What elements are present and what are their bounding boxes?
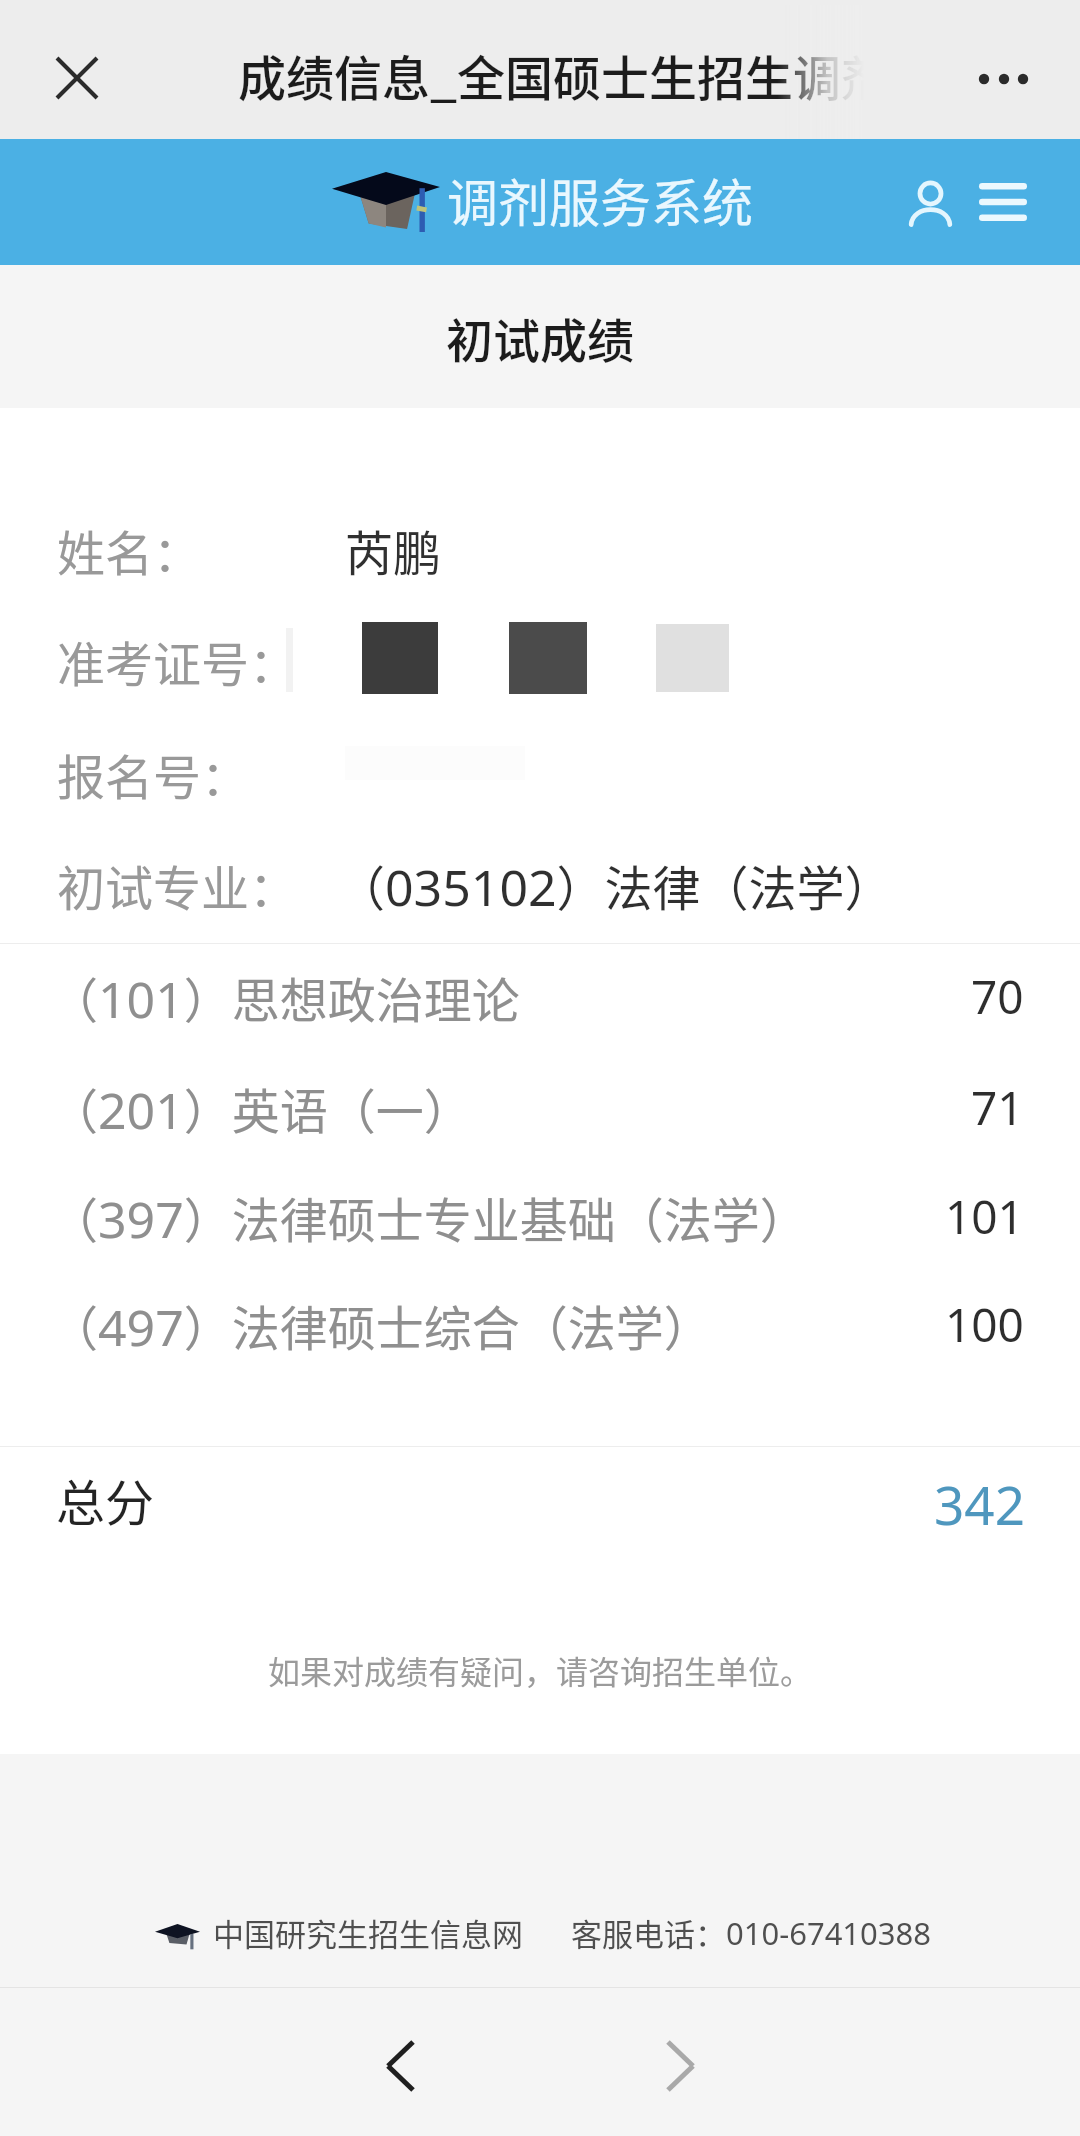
- staticText: 成绩信息_全国硕士生招生调剂服务网: [238, 40, 865, 110]
- staticText: 如果对成绩有疑问，请咨询招生单位。: [0, 1647, 1080, 1693]
- button[interactable]: （497）法律硕士综合（法学）: [50, 1269, 1024, 1380]
- staticText: （497）法律硕士综合（法学）: [50, 1290, 712, 1360]
- staticText: 71: [971, 1076, 1024, 1139]
- staticText: 准考证号：: [57, 626, 298, 696]
- button[interactable]: （101）思想政治理论: [50, 941, 1024, 1052]
- staticText: 70: [971, 965, 1024, 1028]
- button[interactable]: Menu: [961, 152, 1045, 252]
- button[interactable]: Forward: [634, 2020, 726, 2112]
- staticText: 初试成绩: [446, 303, 634, 371]
- staticText: （035102）法律（法学）: [337, 850, 893, 920]
- button[interactable]: 中国研究生招生信息网: [155, 1910, 523, 1955]
- staticText: 中国研究生招生信息网: [213, 1910, 523, 1955]
- staticText: 总分: [56, 1464, 155, 1535]
- button[interactable]: 客服电话：: [571, 1910, 932, 1955]
- staticText: 101: [945, 1185, 1024, 1248]
- button[interactable]: Account: [889, 152, 971, 252]
- staticText: （201）英语（一）: [50, 1073, 472, 1143]
- staticText: 100: [945, 1293, 1024, 1356]
- staticText: （101）思想政治理论: [50, 962, 520, 1032]
- staticText: 客服电话：: [571, 1910, 726, 1955]
- staticText: 初试专业：: [57, 850, 298, 920]
- button[interactable]: More options: [944, 39, 1064, 119]
- staticText: 342: [800, 1468, 1025, 1540]
- button[interactable]: Back: [354, 2020, 446, 2112]
- staticText: （397）法律硕士专业基础（法学）: [50, 1182, 808, 1252]
- staticText: 报名号：: [57, 739, 250, 809]
- button[interactable]: （201）英语（一）: [50, 1052, 1024, 1163]
- staticText: 调剂服务系统: [447, 163, 754, 237]
- staticText: 010-67410388: [726, 1912, 932, 1954]
- button[interactable]: Close: [37, 38, 117, 118]
- button[interactable]: （397）法律硕士专业基础（法学）: [50, 1161, 1024, 1272]
- staticText: 姓名：: [57, 515, 202, 585]
- staticText: 芮鹏: [345, 515, 442, 585]
